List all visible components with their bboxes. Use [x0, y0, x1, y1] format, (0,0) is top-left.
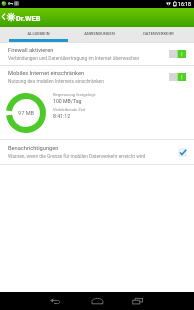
staticText: ALLGEMEIN	[27, 31, 50, 36]
staticText: 16:18	[178, 1, 191, 7]
button[interactable]: DATENVERKEHR	[122, 27, 194, 42]
staticText: DATENVERKEHR	[143, 31, 174, 36]
staticText: Dr.WEB	[16, 14, 41, 23]
button[interactable]: Navigate up	[0, 8, 7, 27]
staticText: Verbleibende Zeit	[53, 107, 86, 112]
button[interactable]: Notifications checkbox	[178, 148, 186, 156]
button[interactable]: Firewall aktivieren	[0, 43, 194, 65]
staticText: Mobiles Internet einschränken	[8, 70, 85, 77]
button[interactable]: Benachrichtigungen	[0, 140, 194, 164]
staticText: Firewall aktivieren	[8, 47, 54, 54]
staticText: 100 MB/Tag	[53, 98, 82, 104]
button[interactable]: Mobiles Internet einschränken	[0, 66, 194, 88]
staticText: Verbindungen und Datenübertragung im Int…	[8, 56, 140, 62]
button[interactable]: Home	[86, 292, 110, 310]
button[interactable]: Back	[44, 292, 68, 310]
staticText: Benachrichtigungen	[8, 145, 59, 152]
button[interactable]: ALLGEMEIN	[0, 27, 77, 42]
staticText: Warnen, wenn die Grenze für mobilen Date…	[8, 154, 146, 160]
staticText: ANWENDUNGEN	[84, 31, 115, 36]
staticText: 8:41:12	[53, 113, 71, 119]
staticText: Begrenzung festgelegt:	[53, 92, 96, 97]
button[interactable]: Toggle	[169, 73, 186, 81]
staticText: 97 MB	[18, 110, 35, 117]
staticText: Nutzung des mobilen Internets einschränk…	[8, 79, 104, 85]
button[interactable]: Recent apps	[126, 292, 150, 310]
button[interactable]: ANWENDUNGEN	[77, 27, 122, 42]
button[interactable]: Toggle	[169, 50, 186, 58]
